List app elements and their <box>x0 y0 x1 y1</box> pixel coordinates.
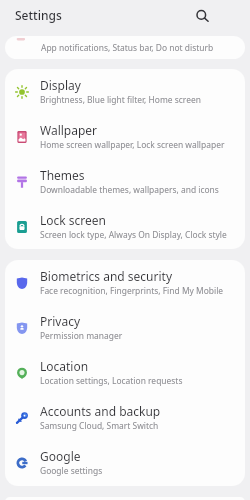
staticText: Lock screen <box>40 212 107 228</box>
button[interactable]: App notifications, Status bar, Do not di… <box>5 36 245 59</box>
staticText: Screen lock type, Always On Display, Clo… <box>40 229 227 241</box>
staticText: Permission manager <box>40 330 123 342</box>
button[interactable]: Privacy <box>5 305 245 350</box>
staticText: Google <box>40 448 81 464</box>
button[interactable]: Search <box>192 6 215 29</box>
staticText: Privacy <box>40 313 81 329</box>
button[interactable]: Wallpaper <box>5 114 245 159</box>
staticText: Face recognition, Fingerprints, Find My … <box>40 285 224 297</box>
button[interactable]: Accounts and backup <box>5 395 245 440</box>
staticText: Location settings, Location requests <box>40 375 183 387</box>
staticText: Wallpaper <box>40 122 98 138</box>
staticText: Brightness, Blue light filter, Home scre… <box>40 94 201 106</box>
staticText: Themes <box>40 167 85 183</box>
button[interactable]: Google <box>5 440 245 485</box>
staticText: Settings <box>15 7 62 23</box>
staticText: Accounts and backup <box>40 403 161 419</box>
staticText: Downloadable themes, wallpapers, and ico… <box>40 184 219 196</box>
button[interactable]: Lock screen <box>5 204 245 249</box>
staticText: Google settings <box>40 465 103 477</box>
button[interactable]: Location <box>5 350 245 395</box>
button[interactable]: Biometrics and security <box>5 260 245 305</box>
staticText: Home screen wallpaper, Lock screen wallp… <box>40 139 225 151</box>
staticText: Samsung Cloud, Smart Switch <box>40 420 159 432</box>
staticText: Location <box>40 358 89 374</box>
button[interactable]: Themes <box>5 159 245 204</box>
staticText: Display <box>40 77 81 93</box>
button[interactable]: Display <box>5 69 245 114</box>
staticText: App notifications, Status bar, Do not di… <box>41 42 214 54</box>
staticText: Biometrics and security <box>40 268 173 284</box>
